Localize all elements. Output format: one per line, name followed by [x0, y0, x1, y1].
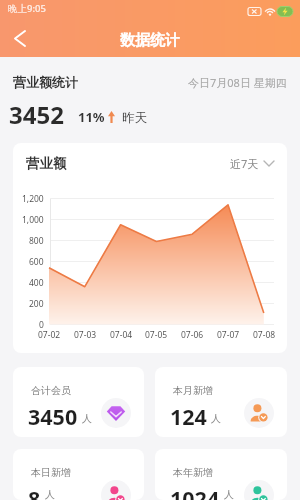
staticText: 本月新增 [173, 384, 213, 397]
staticText: 8 [28, 484, 41, 500]
staticText: 人 [224, 488, 234, 500]
button[interactable] [6, 24, 34, 52]
staticText: 07-06 [181, 329, 204, 341]
staticText: 400 [29, 277, 44, 289]
staticText: 11% [78, 108, 105, 126]
staticText: 07-03 [74, 329, 97, 341]
button[interactable]: 合计会员 [13, 367, 144, 437]
staticText: 200 [29, 298, 44, 310]
staticText: 0 [39, 319, 44, 331]
staticText: 800 [29, 235, 44, 247]
staticText: 3450 [28, 402, 78, 431]
button[interactable]: 本年新增 [155, 449, 287, 500]
button[interactable]: 本月新增 [155, 367, 287, 437]
staticText: 营业额统计 [13, 74, 78, 90]
staticText: 营业额 [26, 155, 67, 172]
staticText: 07-08 [253, 329, 276, 341]
staticText: 1024 [170, 484, 220, 500]
staticText: 今日7月08日 星期四 [188, 75, 287, 90]
staticText: 本年新增 [173, 466, 213, 479]
button[interactable]: 近7天 [230, 156, 274, 171]
staticText: 人 [82, 412, 92, 425]
staticText: 07-07 [217, 329, 240, 341]
staticText: 3452 [9, 98, 64, 131]
staticText: 07-02 [38, 329, 61, 341]
staticText: 昨天 [122, 110, 147, 126]
staticText: 数据统计 [120, 31, 180, 50]
staticText: 600 [29, 256, 44, 268]
staticText: 本日新增 [31, 466, 71, 479]
staticText: 1,200 [22, 193, 44, 205]
staticText: 人 [45, 488, 55, 500]
staticText: 晚上9:05 [8, 2, 46, 15]
staticText: 07-05 [145, 329, 168, 341]
staticText: 人 [211, 412, 221, 425]
staticText: 合计会员 [31, 384, 71, 397]
staticText: 124 [170, 402, 207, 431]
staticText: 1,000 [22, 214, 44, 226]
staticText: 近7天 [230, 156, 259, 171]
button[interactable]: 本日新增 [13, 449, 144, 500]
staticText: 07-04 [110, 329, 133, 341]
